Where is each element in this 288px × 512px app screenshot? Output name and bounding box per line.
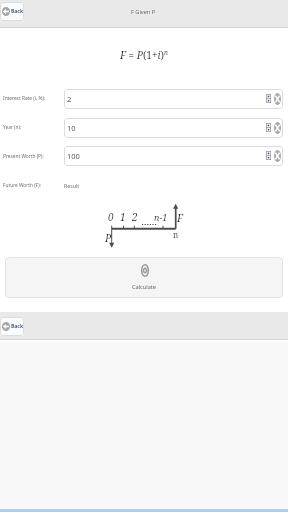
other: Stepper — [266, 94, 271, 103]
other: Calculate — [141, 264, 149, 277]
staticText: 2 — [67, 94, 72, 104]
button[interactable]: 2 — [64, 89, 283, 109]
button[interactable]: Clear — [274, 93, 281, 105]
other: Stepper — [266, 151, 271, 160]
staticText: 100 — [67, 151, 80, 161]
staticText: Present Worth (P): — [3, 153, 44, 160]
button[interactable]: 10 — [64, 118, 283, 138]
staticText: Back — [11, 323, 24, 330]
staticText: 2 — [132, 210, 138, 224]
button[interactable]: Clear — [274, 122, 281, 134]
staticText: Interest Rate (i, %): — [3, 95, 46, 102]
button[interactable]: 100 — [64, 146, 283, 166]
staticText: Result — [64, 182, 80, 189]
staticText: 10 — [67, 123, 76, 133]
staticText: F Given P — [131, 8, 156, 16]
staticText: 0 — [108, 210, 114, 224]
button[interactable]: Clear — [274, 150, 281, 162]
button[interactable]: Back — [0, 2, 24, 21]
staticText: F — [177, 211, 183, 225]
staticText: Calculate — [132, 283, 157, 291]
staticText: F = P(1+i)n — [120, 48, 168, 62]
staticText: n-1 — [154, 211, 168, 223]
staticText: P — [105, 231, 112, 245]
staticText: Back — [11, 8, 24, 15]
button[interactable]: Calculate — [5, 257, 283, 298]
staticText: Future Worth (F): — [3, 182, 41, 189]
other: Back — [2, 322, 10, 331]
button[interactable]: Back — [0, 317, 24, 336]
other: Back — [2, 7, 10, 16]
staticText: n — [173, 229, 179, 240]
other: Stepper — [266, 123, 271, 132]
staticText: Year (n): — [3, 124, 22, 131]
staticText: 1 — [120, 210, 126, 224]
